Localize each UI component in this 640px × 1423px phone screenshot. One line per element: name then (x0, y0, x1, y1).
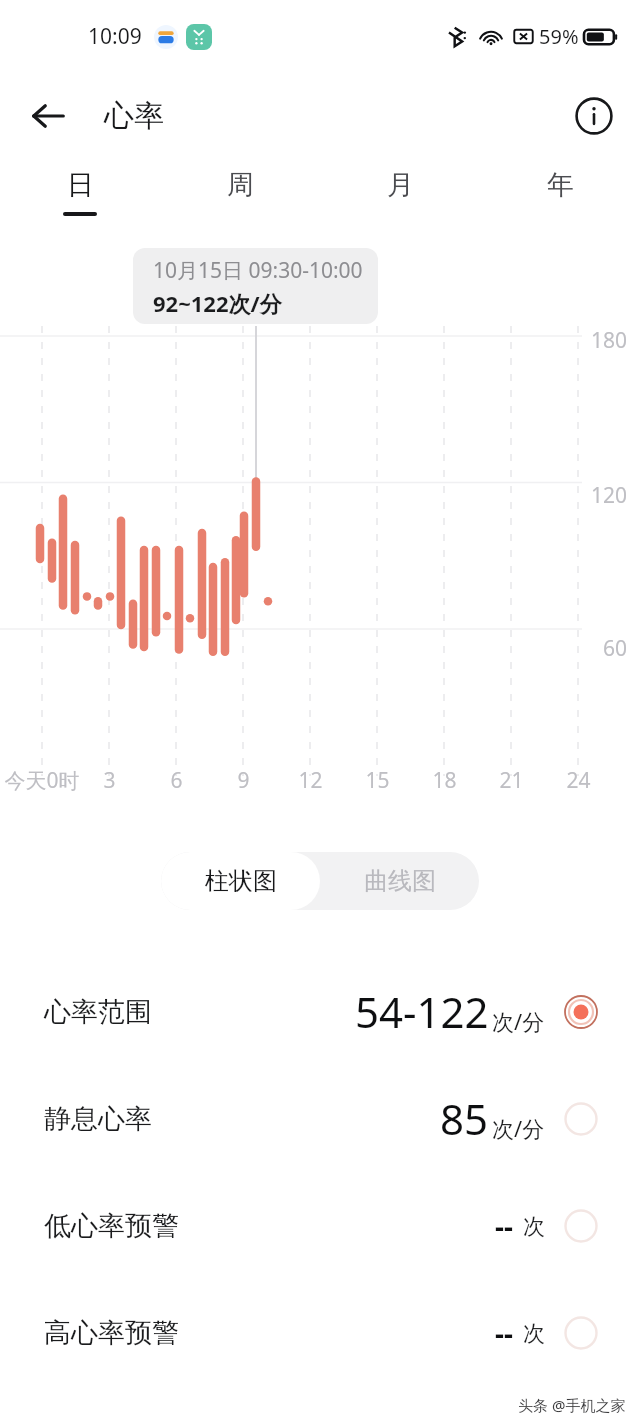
staticText: 6 (170, 766, 183, 795)
staticText: 120 (591, 481, 628, 510)
staticText: 心率范围 (44, 995, 152, 1029)
staticText: 年 (547, 168, 574, 202)
staticText: 日 (67, 168, 94, 202)
staticText: 21 (499, 766, 524, 795)
staticText: 柱状图 (205, 866, 277, 896)
button[interactable]: 10月15日 09:30-10:00 (133, 248, 378, 324)
button[interactable]: 心率范围 (0, 958, 640, 1065)
staticText: 心率 (104, 97, 164, 135)
button[interactable]: 静息心率 (0, 1065, 640, 1172)
staticText: 高心率预警 (44, 1316, 179, 1350)
staticText: 92~122次/分 (153, 288, 282, 318)
button[interactable]: 曲线图 (320, 852, 479, 910)
staticText: 次/分 (492, 1006, 545, 1036)
staticText: 周 (227, 168, 254, 202)
staticText: 曲线图 (364, 866, 436, 896)
button[interactable]: 返回 (20, 88, 76, 144)
staticText: 15 (365, 766, 390, 795)
button[interactable]: 高心率预警 (0, 1279, 640, 1386)
button[interactable]: 说明 (570, 92, 618, 140)
staticText: 今天0时 (4, 766, 80, 795)
staticText: -- (495, 1207, 513, 1245)
staticText: 10月15日 09:30-10:00 (153, 256, 363, 285)
staticText: 次/分 (492, 1113, 545, 1143)
button[interactable]: 周 (160, 160, 320, 246)
staticText: 18 (432, 766, 457, 795)
button[interactable]: 低心率预警 (0, 1172, 640, 1279)
staticText: 次 (523, 1213, 545, 1241)
staticText: 次 (523, 1320, 545, 1348)
staticText: 月 (387, 168, 414, 202)
staticText: 低心率预警 (44, 1209, 179, 1243)
staticText: 59% (539, 23, 579, 50)
staticText: 60 (603, 634, 628, 663)
staticText: 9 (237, 766, 250, 795)
button[interactable]: 年 (480, 160, 640, 246)
button[interactable]: 日 (0, 160, 160, 246)
staticText: 85 (440, 1090, 489, 1147)
button[interactable]: 月 (320, 160, 480, 246)
button[interactable]: 柱状图 (161, 852, 320, 910)
staticText: 静息心率 (44, 1102, 152, 1136)
staticText: 180 (591, 326, 628, 355)
staticText: 头条 @手机之家 (518, 1395, 626, 1415)
staticText: -- (495, 1314, 513, 1352)
staticText: 3 (103, 766, 116, 795)
staticText: 12 (298, 766, 323, 795)
staticText: 54-122 (355, 983, 489, 1040)
staticText: 10:09 (88, 22, 142, 51)
staticText: 24 (566, 766, 591, 795)
